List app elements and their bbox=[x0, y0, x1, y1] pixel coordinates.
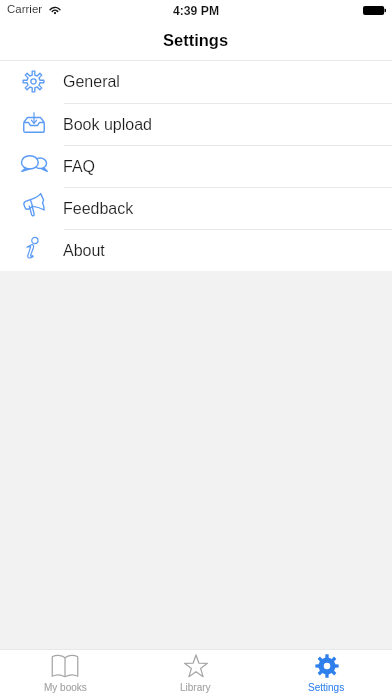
staticText: About bbox=[63, 242, 105, 260]
button[interactable]: About bbox=[0, 229, 392, 271]
button[interactable]: Book upload bbox=[0, 103, 392, 145]
button[interactable]: General bbox=[0, 61, 392, 103]
button[interactable]: Settings bbox=[261, 650, 392, 696]
button[interactable]: My books bbox=[0, 650, 130, 696]
staticText: Feedback bbox=[63, 200, 134, 218]
staticText: Library bbox=[180, 682, 211, 693]
staticText: Settings bbox=[308, 682, 345, 693]
staticText: FAQ bbox=[63, 158, 96, 176]
staticText: 4:39 PM bbox=[173, 4, 220, 18]
staticText: Settings bbox=[163, 31, 229, 49]
button[interactable]: Feedback bbox=[0, 187, 392, 229]
staticText: Book upload bbox=[63, 116, 152, 134]
staticText: Carrier bbox=[7, 3, 43, 16]
staticText: General bbox=[63, 73, 120, 91]
staticText: My books bbox=[44, 682, 87, 693]
button[interactable]: Library bbox=[130, 650, 261, 696]
button[interactable]: FAQ bbox=[0, 145, 392, 187]
